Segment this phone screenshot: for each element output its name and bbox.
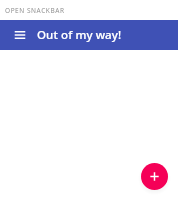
staticText: OPEN SNACKBAR <box>5 6 65 15</box>
staticText: Out of my way! <box>37 27 122 43</box>
button[interactable]: Open navigation menu <box>10 25 30 45</box>
button[interactable]: Add <box>141 163 168 190</box>
button[interactable]: OPEN SNACKBAR <box>5 6 65 15</box>
